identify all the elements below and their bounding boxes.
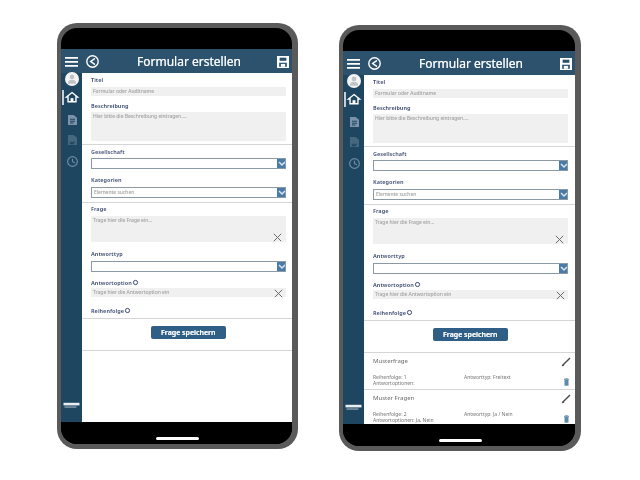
- staticText: Trage hier die Frage ein...: [93, 217, 153, 224]
- staticText: Frage: [91, 205, 107, 212]
- staticText: Antwortoption: [373, 281, 414, 288]
- staticText: Frage speichern: [443, 330, 498, 340]
- button[interactable]: Menu: [345, 55, 361, 71]
- button[interactable]: Question: [91, 216, 286, 242]
- staticText: Reihenfolge: 2: [373, 411, 407, 418]
- button[interactable]: Clear option: [273, 288, 283, 298]
- staticText: Formular oder Auditname: [375, 90, 437, 97]
- button[interactable]: Description: [373, 114, 568, 143]
- staticText: Trage hier die Antwortoption ein: [93, 289, 170, 296]
- button[interactable]: Back: [366, 55, 382, 71]
- button[interactable]: Antworttyp: [373, 263, 568, 274]
- staticText: Trage hier die Frage ein...: [375, 219, 435, 226]
- button[interactable]: Description: [91, 112, 286, 141]
- button[interactable]: Musterfrage: [364, 352, 575, 389]
- button[interactable]: Home: [347, 92, 361, 106]
- button[interactable]: Muster Fragen: [364, 389, 575, 426]
- button[interactable]: Menu: [63, 53, 79, 69]
- button[interactable]: Answer option: [91, 288, 286, 297]
- staticText: Reihenfolge: [373, 309, 406, 316]
- button[interactable]: Question: [373, 218, 568, 244]
- staticText: Kategorien: [373, 178, 404, 185]
- staticText: Antworttyp: Freitext: [464, 374, 511, 381]
- button[interactable]: Save: [275, 54, 291, 70]
- staticText: Formular erstellen: [137, 53, 241, 69]
- staticText: Antwortoptionen: Ja, Nein: [373, 417, 434, 424]
- button[interactable]: Delete: [560, 376, 572, 388]
- button[interactable]: Gesellschaft: [91, 158, 286, 169]
- button[interactable]: Profile: [347, 74, 361, 88]
- staticText: Musterfrage: [373, 357, 408, 365]
- staticText: Titel: [91, 76, 104, 83]
- staticText: Gesellschaft: [373, 150, 407, 157]
- button[interactable]: Edit: [560, 393, 572, 405]
- button[interactable]: Gesellschaft: [373, 160, 568, 171]
- staticText: Antworttyp: Ja / Nein: [464, 411, 513, 418]
- staticText: Muster Fragen: [373, 394, 415, 402]
- staticText: Titel: [373, 78, 386, 85]
- button[interactable]: Title: [373, 89, 568, 98]
- button[interactable]: Frage speichern: [151, 326, 226, 339]
- button[interactable]: Title: [91, 87, 286, 96]
- staticText: Formular erstellen: [419, 55, 523, 71]
- button[interactable]: Edit form: [65, 133, 79, 147]
- staticText: Beschreibung: [91, 102, 129, 109]
- staticText: Hier bitte die Beschreibung eintragen...…: [375, 115, 469, 122]
- staticText: Antwortoption: [91, 279, 132, 286]
- button[interactable]: Kategorien: [91, 187, 286, 198]
- staticText: Gesellschaft: [91, 148, 125, 155]
- button[interactable]: Delete: [560, 413, 572, 425]
- staticText: Trage hier die Antwortoption ein: [375, 291, 452, 298]
- button[interactable]: Antworttyp: [91, 261, 286, 272]
- staticText: Antworttyp: [91, 250, 123, 257]
- button[interactable]: Save: [558, 56, 574, 72]
- button[interactable]: History: [65, 154, 79, 168]
- staticText: Kategorien: [91, 176, 122, 183]
- button[interactable]: Clear question: [554, 234, 564, 244]
- button[interactable]: Home: [65, 90, 79, 104]
- button[interactable]: Back: [84, 53, 100, 69]
- button[interactable]: Profile: [65, 72, 79, 86]
- staticText: Reihenfolge: 1: [373, 374, 407, 381]
- staticText: Formular oder Auditname: [93, 88, 155, 95]
- button[interactable]: Documents: [65, 113, 79, 127]
- button[interactable]: Kategorien: [373, 189, 568, 200]
- staticText: Reihenfolge: [91, 307, 124, 314]
- staticText: Beschreibung: [373, 104, 411, 111]
- button[interactable]: History: [347, 156, 361, 170]
- button[interactable]: Clear question: [272, 232, 282, 242]
- staticText: Hier bitte die Beschreibung eintragen...…: [93, 113, 187, 120]
- button[interactable]: Edit: [560, 356, 572, 368]
- staticText: Frage: [373, 207, 389, 214]
- button[interactable]: Frage speichern: [433, 328, 508, 341]
- staticText: Antworttyp: [373, 252, 405, 259]
- staticText: Frage speichern: [161, 328, 216, 338]
- staticText: Elemente suchen: [94, 189, 277, 196]
- staticText: Elemente suchen: [376, 191, 559, 198]
- button[interactable]: Answer option: [373, 290, 568, 299]
- button[interactable]: Documents: [347, 115, 361, 129]
- staticText: Antwortoptionen:: [373, 380, 415, 387]
- button[interactable]: Clear option: [555, 290, 565, 300]
- button[interactable]: Edit form: [347, 135, 361, 149]
